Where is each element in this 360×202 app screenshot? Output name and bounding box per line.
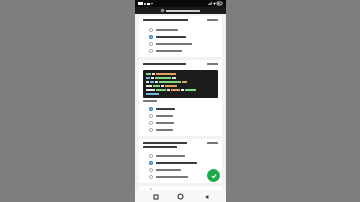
- other: No internet: [161, 9, 164, 12]
- button[interactable]: [143, 105, 218, 112]
- button[interactable]: [143, 26, 218, 33]
- button[interactable]: [143, 40, 218, 47]
- button[interactable]: Back: [201, 191, 212, 202]
- button[interactable]: [143, 173, 218, 180]
- button[interactable]: [143, 166, 218, 173]
- button[interactable]: [143, 126, 218, 133]
- button[interactable]: [143, 47, 218, 54]
- button[interactable]: Recent apps: [150, 191, 161, 202]
- button[interactable]: Submit: [207, 169, 220, 182]
- button[interactable]: [143, 159, 218, 166]
- button[interactable]: [143, 112, 218, 119]
- button[interactable]: [143, 119, 218, 126]
- button[interactable]: [143, 152, 218, 159]
- button[interactable]: [143, 33, 218, 40]
- button[interactable]: Home: [175, 191, 186, 202]
